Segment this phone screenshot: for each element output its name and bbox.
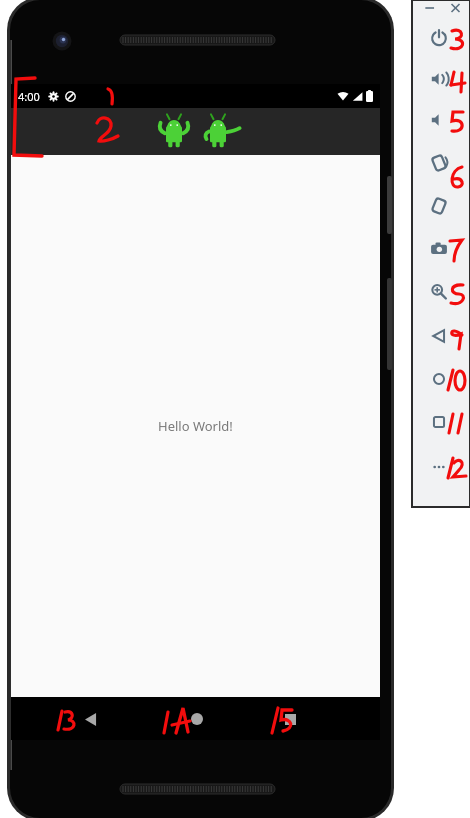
button[interactable]: Home xyxy=(179,701,215,737)
button[interactable]: Android mascot waving xyxy=(197,111,239,153)
button[interactable]: Take screenshot xyxy=(426,236,452,262)
button[interactable]: Home xyxy=(426,366,452,392)
button[interactable]: Volume down xyxy=(426,107,452,133)
button[interactable]: Back xyxy=(426,323,452,349)
button[interactable]: Power xyxy=(426,25,452,51)
button[interactable]: More options xyxy=(426,454,452,480)
button[interactable]: Back xyxy=(73,701,109,737)
button[interactable]: Android mascot cheering xyxy=(153,111,195,153)
button[interactable]: Rotate right xyxy=(426,193,452,219)
button[interactable]: Volume up xyxy=(426,66,452,92)
staticText: 4:00 xyxy=(18,89,40,104)
button[interactable]: Recent apps xyxy=(272,701,308,737)
staticText: Hello World! xyxy=(158,417,233,435)
button[interactable]: Zoom mode xyxy=(426,279,452,305)
button[interactable]: Rotate left xyxy=(426,150,452,176)
button[interactable]: Overview xyxy=(426,409,452,435)
